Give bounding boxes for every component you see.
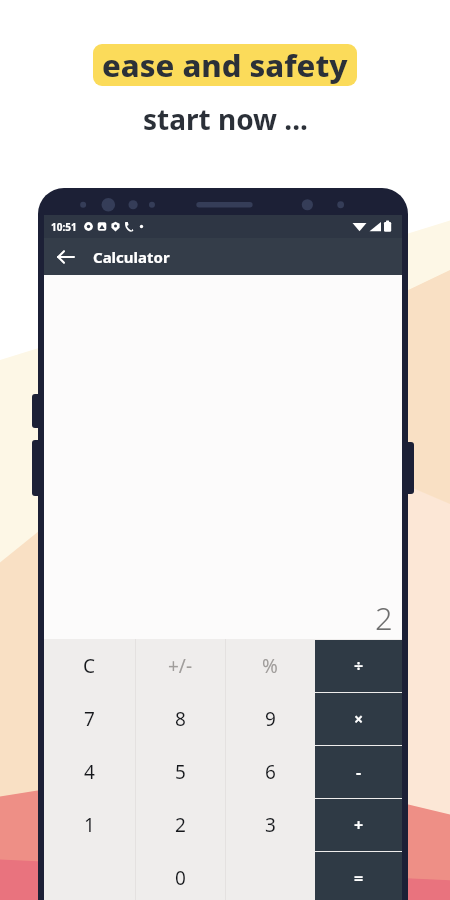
button[interactable]: × [315,693,402,745]
staticText: 7 [84,706,95,732]
button[interactable]: 5 [135,745,225,798]
staticText: 5 [175,759,186,785]
staticText: 4 [84,759,95,785]
button[interactable]: 6 [225,745,315,798]
staticText: 2 [175,812,186,838]
button[interactable]: 8 [135,692,225,745]
button[interactable]: 7 [44,692,135,745]
button[interactable]: Back [49,240,83,274]
staticText: % [262,653,278,679]
button[interactable]: 1 [44,798,135,851]
staticText: 1 [84,812,95,838]
staticText: 0 [175,865,186,891]
button[interactable]: % [225,639,315,692]
staticText: 2 [375,597,393,639]
button[interactable]: = [315,852,402,900]
staticText: 6 [265,759,276,785]
button[interactable]: 9 [225,692,315,745]
staticText: × [354,708,364,730]
staticText: 9 [265,706,276,732]
staticText: C [83,653,96,679]
staticText: = [354,867,364,889]
button[interactable]: - [315,746,402,798]
button[interactable]: 4 [44,745,135,798]
staticText: ease and safety [102,44,348,86]
staticText: - [356,761,362,783]
staticText: start now ... [143,100,308,138]
staticText: +/- [168,653,193,679]
button[interactable]: 0 [135,851,225,900]
button[interactable]: ÷ [315,640,402,692]
button[interactable]: 3 [225,798,315,851]
button[interactable]: C [44,639,135,692]
button[interactable]: +/- [135,639,225,692]
button[interactable]: 2 [135,798,225,851]
button[interactable]: + [315,799,402,851]
staticText: 10:51 [51,220,77,234]
staticText: Calculator [93,247,170,267]
staticText: ÷ [354,655,364,677]
staticText: 3 [265,812,276,838]
staticText: 8 [175,706,186,732]
staticText: + [354,814,364,836]
